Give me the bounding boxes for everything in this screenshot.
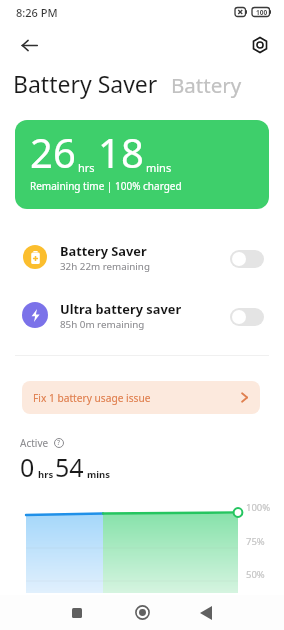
staticText: 18 — [98, 125, 144, 179]
button[interactable]: 26 — [15, 120, 269, 209]
staticText: Battery Saver — [60, 242, 147, 259]
staticText: hrs — [78, 160, 95, 175]
staticText: 100% — [246, 501, 271, 514]
staticText: 0 — [20, 450, 35, 484]
button[interactable]: Ultra battery saver — [0, 286, 284, 344]
staticText: 32h 22m remaining — [60, 260, 150, 273]
button[interactable] — [230, 308, 264, 326]
staticText: 50% — [246, 568, 265, 581]
staticText: ? — [57, 438, 61, 448]
button[interactable] — [230, 250, 264, 268]
staticText: Ultra battery saver — [60, 300, 182, 317]
button[interactable]: Battery Saver — [0, 228, 284, 286]
staticText: 54 — [55, 450, 84, 484]
button[interactable]: Back — [185, 595, 227, 630]
staticText: Active — [20, 436, 49, 450]
staticText: 75% — [246, 535, 265, 548]
staticText: mins — [146, 160, 172, 175]
staticText: Fix 1 battery usage issue — [33, 391, 151, 405]
staticText: Remaining time | 100% charged — [30, 179, 182, 193]
staticText: 8:26 PM — [16, 5, 58, 20]
staticText: mins — [87, 468, 111, 481]
button[interactable]: Battery — [171, 71, 242, 99]
staticText: hrs — [38, 468, 54, 481]
staticText: 26 — [30, 125, 76, 179]
staticText: 85h 0m remaining — [60, 318, 145, 331]
button[interactable]: Home — [121, 595, 163, 630]
staticText: 100 — [256, 8, 268, 17]
button[interactable]: Fix 1 battery usage issue — [22, 381, 260, 414]
button[interactable]: Back — [13, 29, 45, 61]
button[interactable]: Settings — [244, 29, 276, 61]
button[interactable]: Recents — [56, 595, 98, 630]
staticText: Battery Saver — [13, 68, 158, 99]
